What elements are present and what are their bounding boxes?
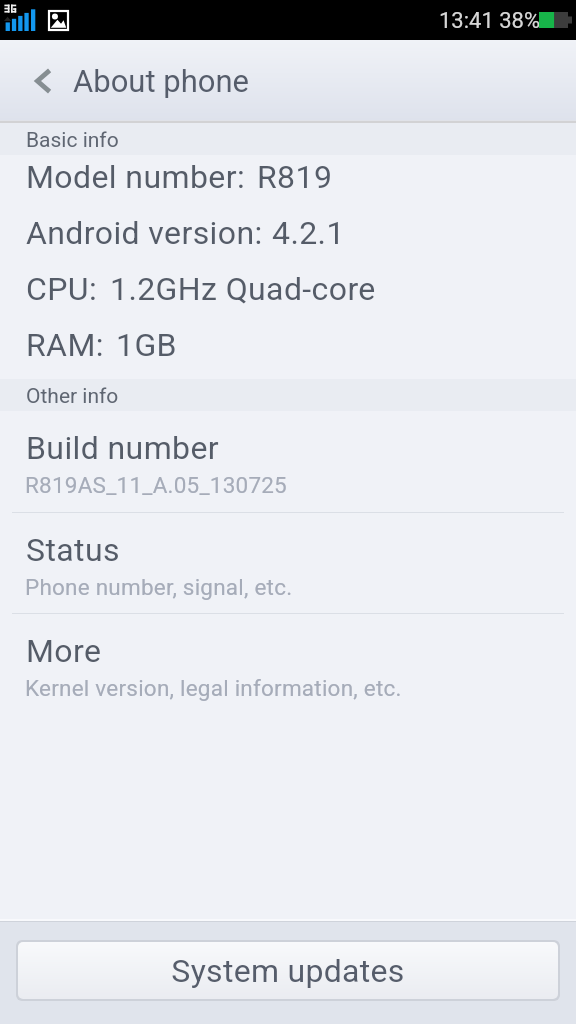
button[interactable]: Status <box>0 513 576 614</box>
button[interactable]: Model number: <box>0 155 576 211</box>
button[interactable]: System updates <box>18 942 558 999</box>
staticText: CPU: <box>26 270 98 308</box>
staticText: Phone number, signal, etc. <box>25 574 293 600</box>
staticText: System updates <box>171 952 405 990</box>
staticText: Build number <box>26 429 220 467</box>
button[interactable]: CPU: <box>0 267 576 323</box>
button[interactable]: More <box>0 614 576 715</box>
staticText: Android version: <box>26 214 263 252</box>
staticText: Status <box>26 531 120 569</box>
button[interactable]: Android version: <box>0 211 576 267</box>
staticText: R819AS_11_A.05_130725 <box>25 472 287 498</box>
staticText: Kernel version, legal information, etc. <box>25 675 402 701</box>
staticText: 1.2GHz Quad-core <box>110 270 376 308</box>
button[interactable]: RAM: <box>0 323 576 379</box>
staticText: 4.2.1 <box>272 214 345 252</box>
staticText: About phone <box>73 63 249 99</box>
staticText: More <box>26 632 102 670</box>
staticText: Other info <box>26 384 119 409</box>
button[interactable]: Navigate up <box>0 40 280 120</box>
other: Screenshot captured <box>48 10 69 31</box>
staticText: Model number: <box>26 158 246 196</box>
button[interactable]: Build number <box>0 411 576 512</box>
staticText: RAM: <box>26 326 104 364</box>
staticText: R819 <box>257 158 333 196</box>
staticText: 1GB <box>116 326 177 364</box>
staticText: Basic info <box>26 128 119 153</box>
staticText: 13:41 38% <box>439 8 541 34</box>
